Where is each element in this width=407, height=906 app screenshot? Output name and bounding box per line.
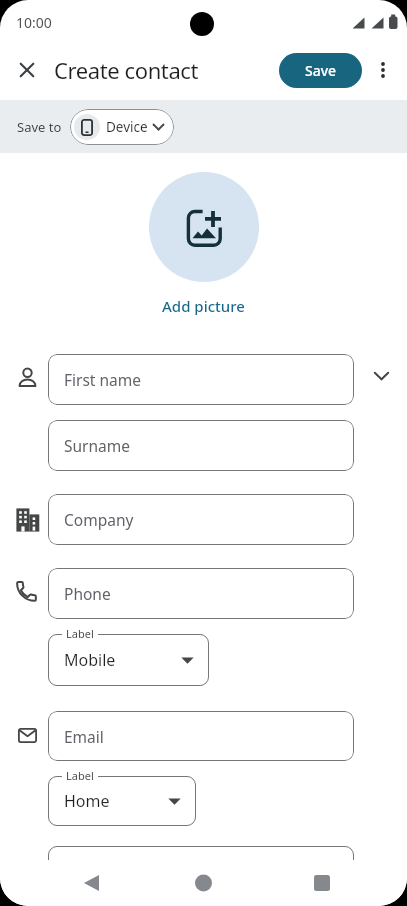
staticText: Device (106, 118, 148, 136)
staticText: Label (66, 768, 94, 783)
staticText: Email (64, 726, 104, 747)
button[interactable]: Save (279, 53, 362, 88)
button[interactable]: Surname (48, 420, 354, 471)
staticText: Mobile (64, 649, 116, 671)
staticText: Surname (64, 435, 130, 456)
button[interactable] (149, 172, 259, 282)
button[interactable] (271, 860, 407, 906)
button[interactable]: Add picture (162, 296, 245, 316)
button[interactable] (0, 860, 135, 906)
staticText: Save (305, 61, 337, 80)
button[interactable]: Email (48, 711, 354, 761)
button[interactable] (361, 356, 401, 396)
staticText: Save to (17, 118, 62, 136)
button[interactable]: Phone (48, 568, 354, 619)
staticText: Phone (64, 583, 111, 604)
staticText: First name (64, 369, 142, 390)
button[interactable]: First name (48, 354, 354, 405)
button[interactable]: Company (48, 494, 354, 545)
button[interactable] (362, 44, 403, 96)
staticText: Label (66, 626, 94, 641)
button[interactable]: Mobile (48, 634, 209, 686)
button[interactable] (0, 44, 54, 96)
staticText: 10:00 (16, 13, 52, 32)
staticText: Add picture (162, 296, 245, 316)
staticText: Create contact (54, 55, 199, 85)
staticText: Company (64, 509, 134, 530)
staticText: Home (64, 790, 110, 812)
button[interactable]: Device (70, 109, 174, 145)
button[interactable]: Home (48, 776, 196, 826)
button[interactable] (135, 860, 271, 906)
